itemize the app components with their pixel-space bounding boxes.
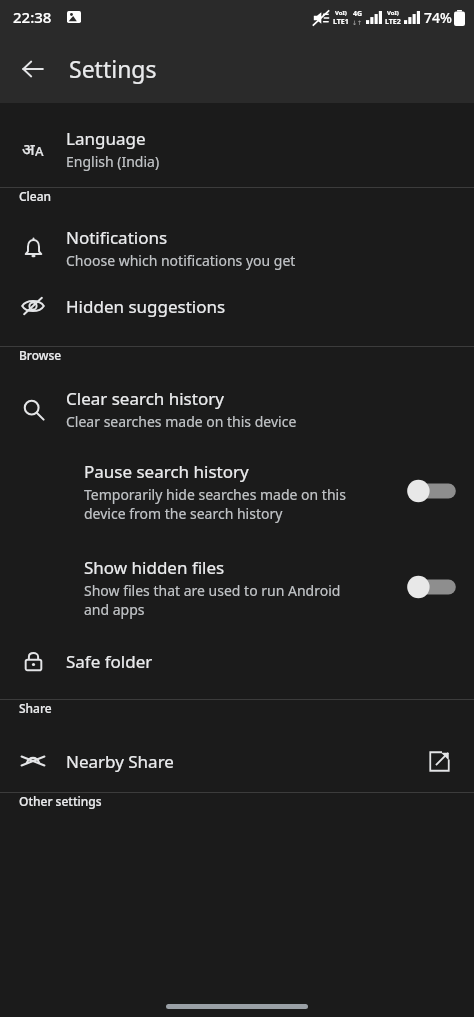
- staticText: Other settings: [19, 793, 102, 809]
- button[interactable]: Nearby Share: [0, 730, 474, 792]
- button[interactable]: Show hidden files toggle: [408, 570, 460, 604]
- staticText: VoI): [335, 9, 347, 17]
- staticText: LTE2: [385, 17, 401, 27]
- staticText: English (India): [66, 152, 160, 171]
- staticText: Notifications: [66, 226, 168, 249]
- button[interactable]: Show hidden files: [0, 541, 474, 633]
- staticText: Share: [19, 700, 52, 716]
- staticText: Safe folder: [66, 650, 153, 673]
- staticText: Show files that are used to run Android …: [84, 581, 341, 619]
- staticText: Pause search history: [84, 460, 249, 483]
- button[interactable]: Clear search history: [0, 377, 474, 441]
- staticText: Language: [66, 127, 146, 150]
- staticText: Clear search history: [66, 387, 224, 410]
- button[interactable]: Hidden suggestions: [0, 278, 474, 334]
- staticText: Show hidden files: [84, 556, 225, 579]
- staticText: अ: [22, 138, 35, 160]
- button[interactable]: Pause search history toggle: [408, 474, 460, 508]
- button[interactable]: अ: [0, 117, 474, 181]
- staticText: Nearby Share: [66, 750, 422, 773]
- button[interactable]: Notifications: [0, 218, 474, 278]
- staticText: Temporarily hide searches made on this d…: [84, 485, 346, 523]
- staticText: 4G: [353, 9, 363, 19]
- staticText: A: [35, 142, 44, 160]
- staticText: 22:38: [13, 7, 52, 27]
- staticText: Choose which notifications you get: [66, 251, 296, 270]
- staticText: Clean: [19, 188, 52, 204]
- staticText: Hidden suggestions: [66, 295, 226, 318]
- staticText: Browse: [19, 347, 62, 363]
- other: Open Nearby Share settings: [422, 744, 456, 778]
- staticText: Settings: [69, 53, 157, 84]
- button[interactable]: Safe folder: [0, 633, 474, 689]
- button[interactable]: Pause search history: [0, 441, 474, 541]
- staticText: ↓↑: [352, 19, 363, 26]
- staticText: VoI): [387, 9, 399, 17]
- staticText: LTE1: [333, 17, 349, 27]
- staticText: Clear searches made on this device: [66, 412, 297, 431]
- staticText: 74%: [424, 8, 452, 27]
- button[interactable]: Back: [10, 46, 56, 92]
